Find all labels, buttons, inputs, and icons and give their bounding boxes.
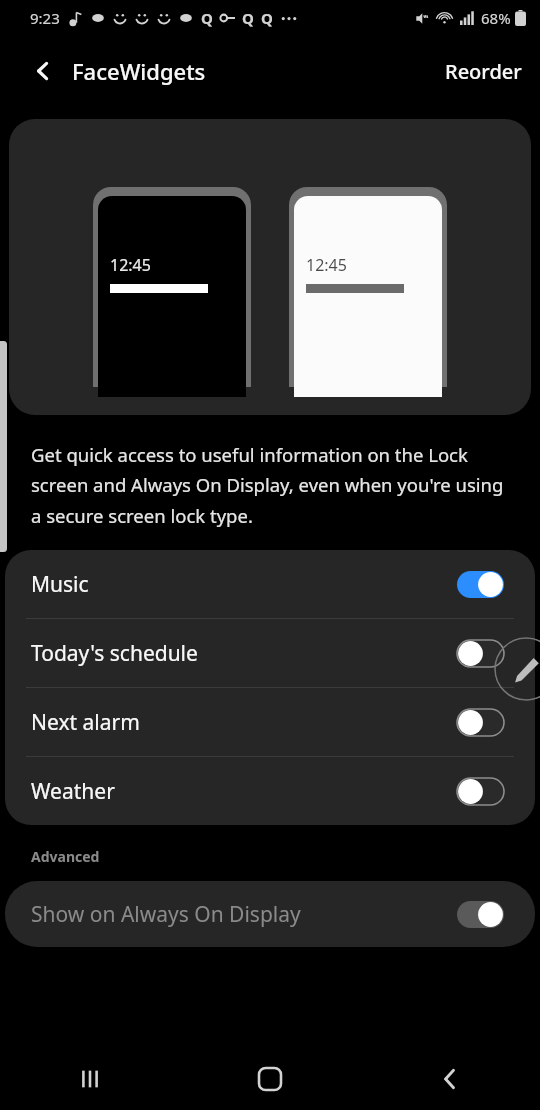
button[interactable]: Show on Always On Display — [5, 881, 535, 947]
staticText: Q — [242, 8, 254, 28]
button[interactable]: Edit — [494, 637, 540, 701]
staticText: Show on Always On Display — [31, 900, 301, 929]
button[interactable]: Back — [420, 1049, 480, 1109]
staticText: 68% — [481, 8, 511, 28]
staticText: Advanced — [31, 847, 100, 866]
staticText: Reorder — [445, 58, 522, 85]
button[interactable]: Music — [5, 550, 535, 618]
staticText: 12:45 — [306, 254, 347, 276]
staticText: Music — [31, 570, 89, 599]
staticText: FaceWidgets — [72, 56, 206, 86]
staticText: Get quick access to useful information o… — [31, 442, 509, 529]
staticText: 12:45 — [110, 254, 151, 276]
staticText: Today's schedule — [31, 639, 198, 668]
button[interactable]: Next alarm — [5, 688, 535, 756]
staticText: Q — [261, 8, 273, 28]
staticText: Next alarm — [31, 708, 140, 737]
button[interactable]: Today's schedule — [5, 619, 535, 687]
button[interactable]: Reorder — [437, 52, 530, 91]
staticText: Q — [201, 8, 213, 28]
button[interactable]: Home — [240, 1049, 300, 1109]
button[interactable]: Weather — [5, 757, 535, 825]
staticText: 9:23 — [30, 8, 60, 28]
button[interactable]: Recents — [60, 1049, 120, 1109]
button[interactable]: Back — [22, 50, 64, 92]
staticText: Weather — [31, 777, 115, 806]
